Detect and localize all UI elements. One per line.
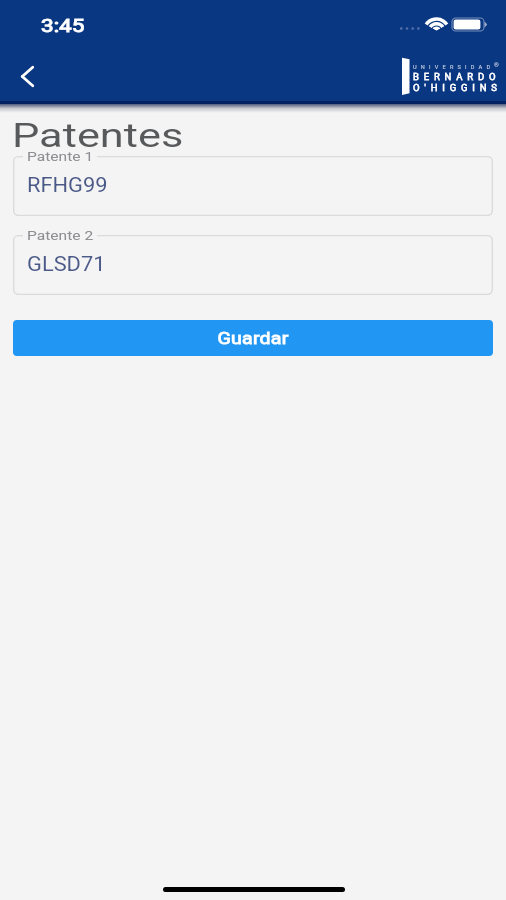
staticText: 3:45 [41,15,85,36]
staticText: Patente 2 [27,229,93,243]
staticText: ® [494,61,499,68]
staticText: O'HIGGINS [413,82,502,93]
staticText: UNIVERSIDAD [413,64,495,71]
staticText: GLSD71 [27,253,106,276]
staticText: Guardar [217,328,289,348]
button[interactable]: Back [5,54,49,98]
button[interactable]: Guardar [13,320,493,356]
staticText: Patente 1 [27,150,93,164]
staticText: BERNARDO [413,71,501,82]
staticText: RFHG99 [27,174,108,197]
staticText: Patentes [12,115,184,155]
